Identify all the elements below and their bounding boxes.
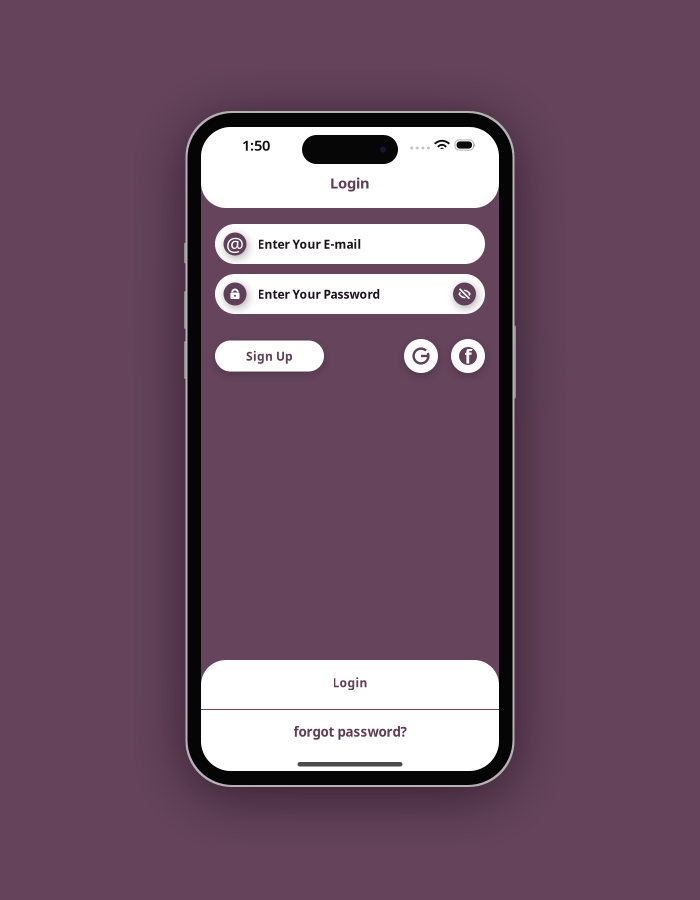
staticText: 1:50 bbox=[242, 135, 270, 155]
staticText: forgot password? bbox=[293, 723, 406, 740]
button[interactable]: Sign Up bbox=[215, 340, 324, 371]
button[interactable]: @ bbox=[215, 224, 485, 264]
button[interactable]: Login bbox=[201, 660, 499, 709]
button[interactable]: Sign in with Facebook bbox=[451, 339, 485, 373]
staticText: Sign Up bbox=[246, 348, 293, 364]
button[interactable]: Sign in with Google bbox=[404, 339, 438, 373]
staticText: f bbox=[464, 344, 471, 369]
staticText: Enter Your Password bbox=[257, 286, 380, 302]
button[interactable]: forgot password? bbox=[201, 710, 499, 757]
staticText: @ bbox=[226, 231, 244, 257]
button[interactable]: Enter Your Password bbox=[215, 274, 485, 314]
staticText: Login bbox=[330, 173, 370, 192]
staticText: Login bbox=[332, 674, 367, 690]
staticText: Enter Your E-mail bbox=[257, 236, 361, 252]
